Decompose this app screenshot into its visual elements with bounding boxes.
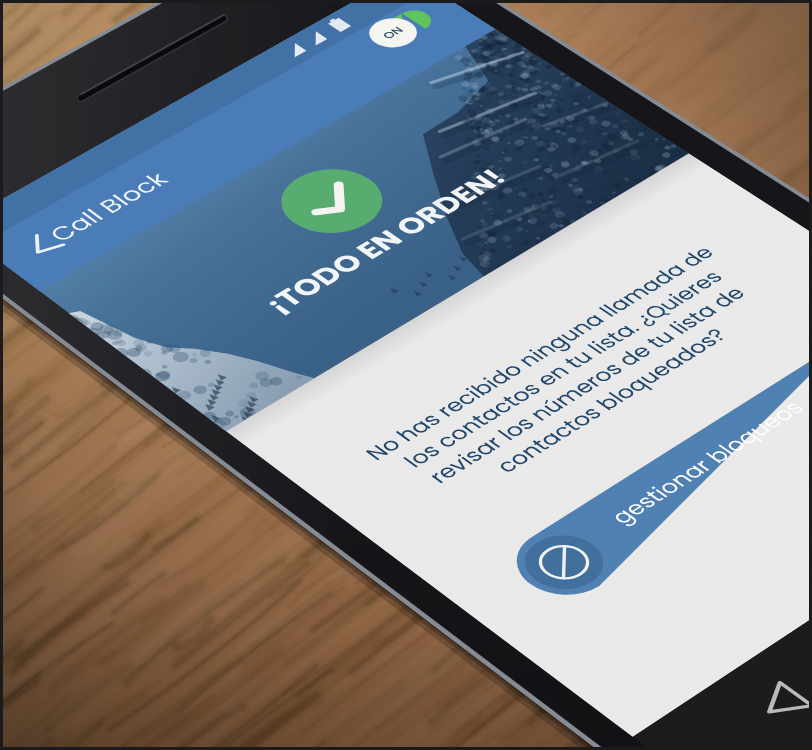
button[interactable]: Call Block screen photo xyxy=(0,0,812,750)
